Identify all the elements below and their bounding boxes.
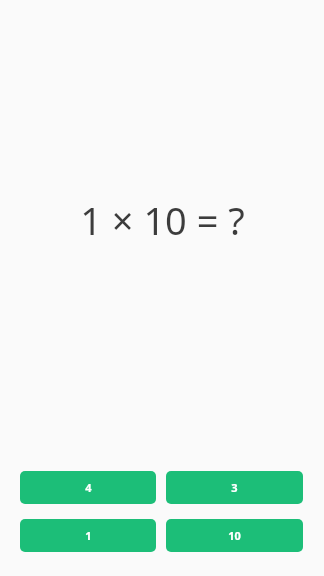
staticText: 1 <box>85 528 92 543</box>
staticText: 10 <box>228 528 241 543</box>
button[interactable]: 4 <box>20 471 156 504</box>
staticText: 1 × 10 = ? <box>80 194 245 246</box>
staticText: 3 <box>231 480 238 495</box>
button[interactable]: 1 <box>20 519 156 552</box>
button[interactable]: 3 <box>166 471 303 504</box>
staticText: 4 <box>85 480 92 495</box>
button[interactable]: 10 <box>166 519 303 552</box>
